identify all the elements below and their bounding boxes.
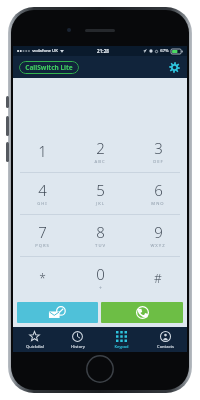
staticText: 1: [38, 141, 47, 161]
staticText: History: [71, 344, 85, 349]
staticText: vodafone UK: [32, 48, 58, 54]
staticText: 9: [154, 222, 163, 242]
staticText: 7: [38, 222, 47, 242]
button[interactable]: 2: [71, 130, 129, 172]
button[interactable]: CallSwitch Lite: [19, 61, 79, 74]
button[interactable]: 8: [71, 215, 129, 256]
button[interactable]: Contacts: [143, 327, 187, 352]
button[interactable]: Quickdial: [13, 327, 56, 352]
staticText: ABC: [94, 159, 106, 165]
staticText: CallSwitch Lite: [25, 63, 73, 72]
staticText: TUV: [95, 243, 106, 249]
staticText: Contacts: [157, 344, 174, 349]
staticText: JKL: [96, 201, 105, 207]
button[interactable]: Call: [101, 302, 183, 323]
button[interactable]: 9: [129, 215, 187, 256]
button[interactable]: Settings: [166, 59, 182, 75]
staticText: GHI: [37, 201, 48, 207]
button[interactable]: 7: [13, 215, 71, 256]
button[interactable]: 5: [71, 173, 129, 214]
staticText: +: [99, 285, 103, 292]
staticText: Quickdial: [26, 344, 44, 349]
staticText: 21:28: [97, 48, 109, 54]
staticText: DEF: [153, 159, 164, 165]
staticText: 8: [96, 222, 105, 242]
button[interactable]: 4: [13, 173, 71, 214]
staticText: 0: [96, 264, 105, 284]
staticText: 5: [96, 180, 105, 200]
button[interactable]: History: [56, 327, 99, 352]
button[interactable]: Send message: [17, 302, 98, 323]
staticText: MNO: [151, 201, 165, 207]
button[interactable]: 1: [13, 130, 71, 172]
staticText: 4: [38, 180, 47, 200]
staticText: 67%: [160, 48, 169, 54]
staticText: 2: [96, 138, 105, 158]
staticText: 6: [154, 180, 163, 200]
staticText: 3: [154, 138, 163, 158]
button[interactable]: 3: [129, 130, 187, 172]
staticText: WXYZ: [150, 243, 166, 249]
button[interactable]: Keypad: [99, 327, 143, 352]
staticText: #: [154, 270, 162, 286]
button[interactable]: #: [129, 257, 187, 298]
button[interactable]: 0: [71, 257, 129, 298]
staticText: Keypad: [114, 344, 129, 349]
staticText: PQRS: [35, 243, 50, 249]
button[interactable]: 6: [129, 173, 187, 214]
button[interactable]: *: [13, 257, 71, 298]
staticText: *: [39, 270, 46, 286]
